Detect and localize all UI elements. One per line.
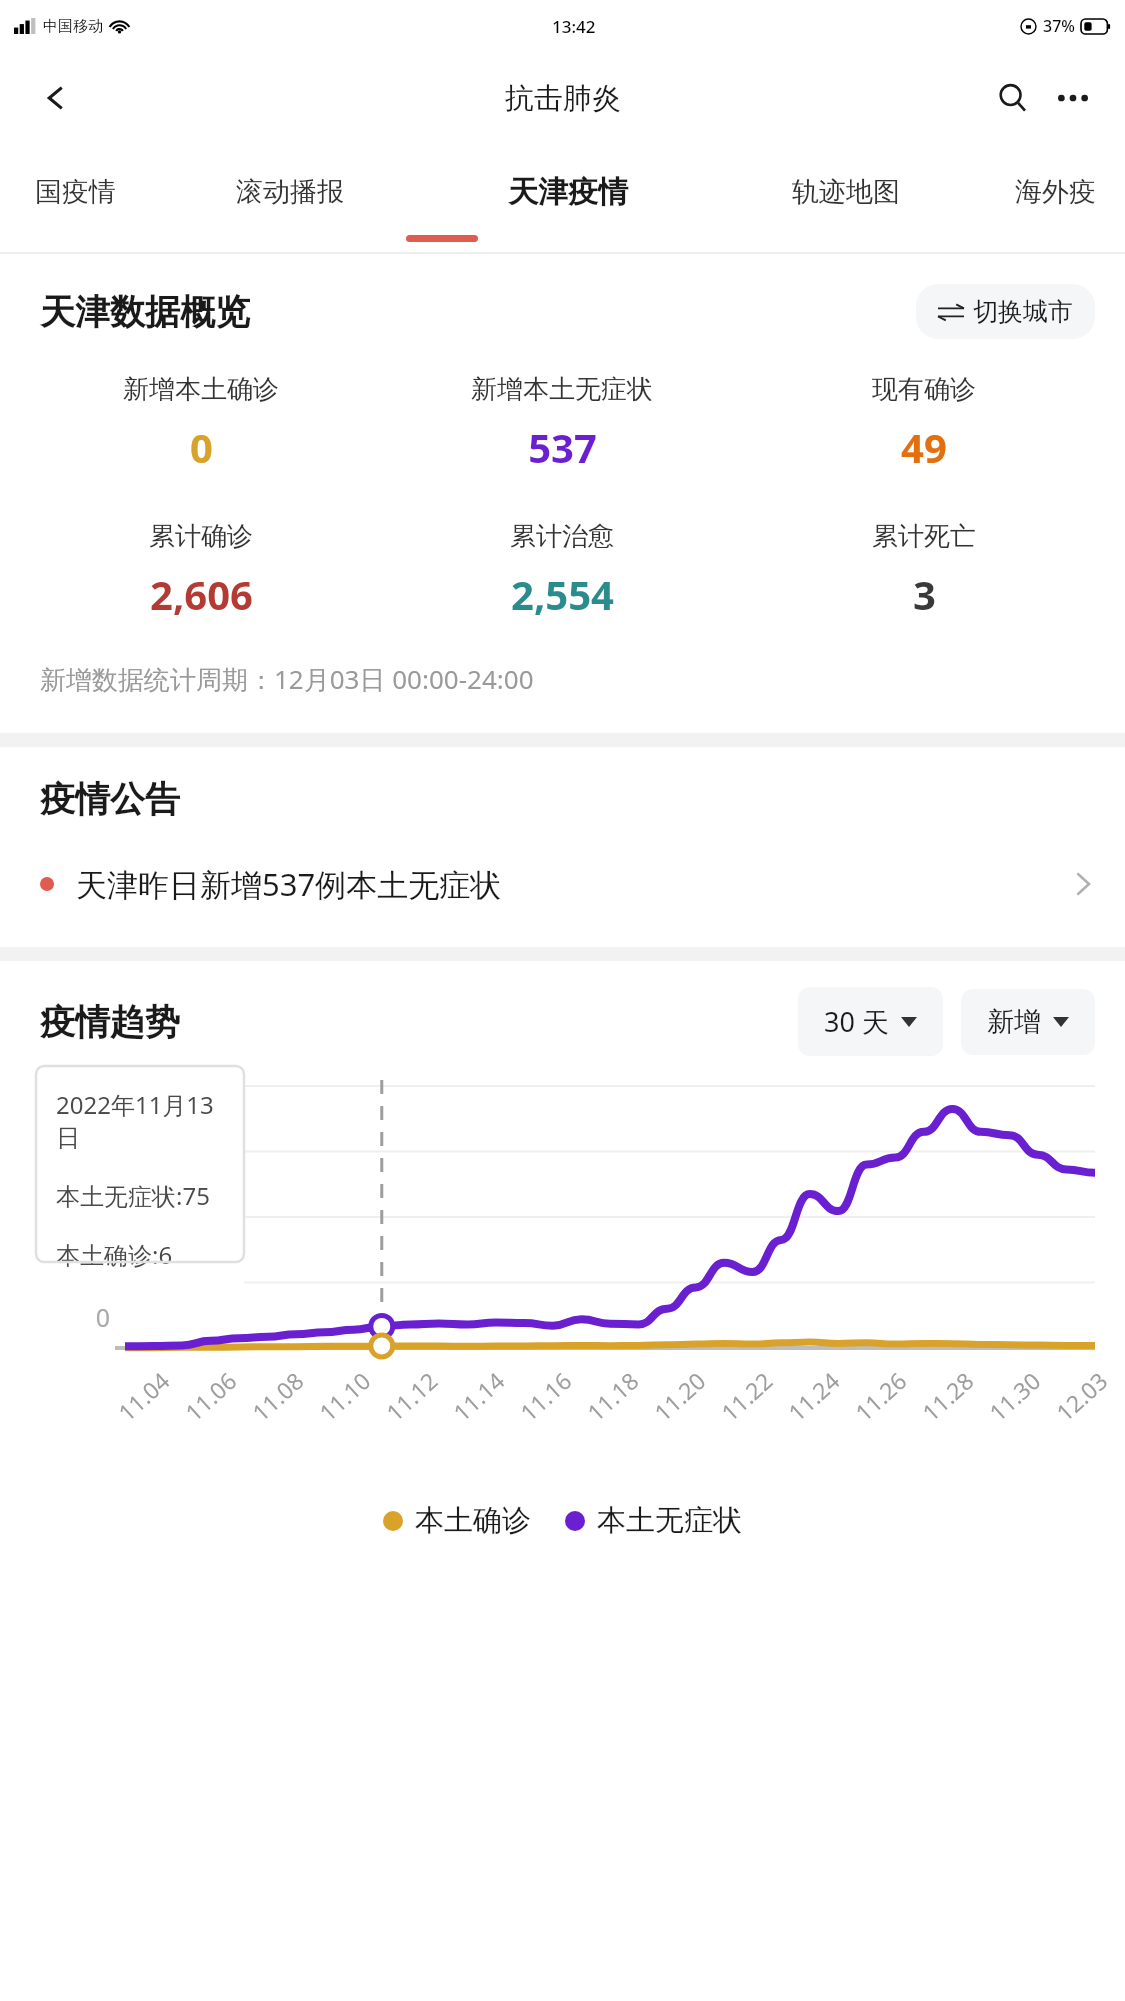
- staticText: 13:42: [552, 15, 596, 38]
- staticText: 新增: [987, 1005, 1041, 1039]
- staticText: 11.20: [647, 1365, 711, 1427]
- staticText: 11.10: [312, 1365, 376, 1427]
- staticText: 11.26: [848, 1365, 912, 1427]
- staticText: 11.22: [714, 1365, 778, 1427]
- staticText: 11.08: [245, 1365, 309, 1427]
- staticText: 800: [67, 1072, 110, 1106]
- staticText: 3: [913, 567, 936, 621]
- staticText: 600: [67, 1129, 110, 1163]
- staticText: 11.18: [580, 1365, 644, 1427]
- staticText: 轨迹地图: [792, 175, 900, 209]
- staticText: 11.30: [982, 1365, 1046, 1427]
- staticText: 新增数据统计周期：12月03日 00:00-24:00: [40, 661, 534, 697]
- staticText: 12.03: [1049, 1365, 1113, 1427]
- button[interactable]: 天津疫情: [429, 144, 707, 240]
- staticText: 2,554: [511, 567, 614, 621]
- staticText: 37%: [1043, 15, 1075, 37]
- staticText: 天津昨日新增537例本土无症状: [76, 863, 502, 905]
- staticText: 现有确诊: [872, 373, 976, 406]
- button[interactable]: 轨迹地图: [707, 144, 985, 240]
- staticText: 本土确诊:6: [56, 1238, 173, 1271]
- button[interactable]: 切换城市: [916, 284, 1095, 339]
- staticText: 2,606: [150, 567, 253, 621]
- staticText: 11.16: [513, 1365, 577, 1427]
- staticText: 抗击肺炎: [505, 80, 621, 117]
- staticText: 30 天: [824, 1003, 889, 1040]
- staticText: 累计死亡: [872, 520, 976, 553]
- button[interactable]: Search: [985, 70, 1041, 126]
- button[interactable]: 新增: [961, 989, 1095, 1055]
- staticText: 天津疫情: [508, 173, 628, 211]
- staticText: 天津数据概览: [40, 290, 250, 334]
- staticText: 2022年11月13日: [56, 1088, 224, 1153]
- button[interactable]: 天津昨日新增537例本土无症状: [0, 855, 1125, 913]
- staticText: 国疫情: [35, 175, 116, 209]
- staticText: 切换城市: [973, 296, 1073, 327]
- staticText: 本土无症状: [597, 1502, 742, 1539]
- staticText: 本土无症状:75: [56, 1179, 210, 1212]
- staticText: 11.06: [178, 1365, 242, 1427]
- staticText: 中国移动: [43, 17, 103, 36]
- staticText: 累计治愈: [510, 520, 614, 553]
- staticText: 疫情趋势: [40, 1000, 180, 1044]
- button[interactable]: More options: [1047, 72, 1099, 124]
- staticText: 疫情公告: [40, 777, 180, 821]
- button[interactable]: 滚动播报: [150, 144, 429, 240]
- button[interactable]: 海外疫: [985, 144, 1125, 240]
- staticText: 11.04: [111, 1365, 175, 1427]
- staticText: 滚动播报: [236, 175, 344, 209]
- button[interactable]: 国疫情: [0, 144, 150, 240]
- staticText: 11.28: [915, 1365, 979, 1427]
- staticText: 11.24: [781, 1365, 845, 1427]
- button[interactable]: 30 天: [798, 987, 943, 1056]
- staticText: 400: [67, 1186, 110, 1220]
- staticText: 0: [190, 420, 213, 474]
- staticText: 0: [95, 1300, 110, 1334]
- staticText: 海外疫: [1015, 175, 1096, 209]
- button[interactable]: Back: [28, 70, 84, 126]
- staticText: 新增本土确诊: [123, 373, 279, 406]
- staticText: 累计确诊: [149, 520, 253, 553]
- staticText: 11.14: [446, 1365, 510, 1427]
- staticText: 新增本土无症状: [471, 373, 653, 406]
- staticText: 537: [528, 420, 597, 474]
- staticText: 200: [67, 1243, 110, 1277]
- staticText: 11.12: [379, 1365, 443, 1427]
- staticText: 本土确诊: [415, 1502, 531, 1539]
- staticText: 49: [901, 420, 947, 474]
